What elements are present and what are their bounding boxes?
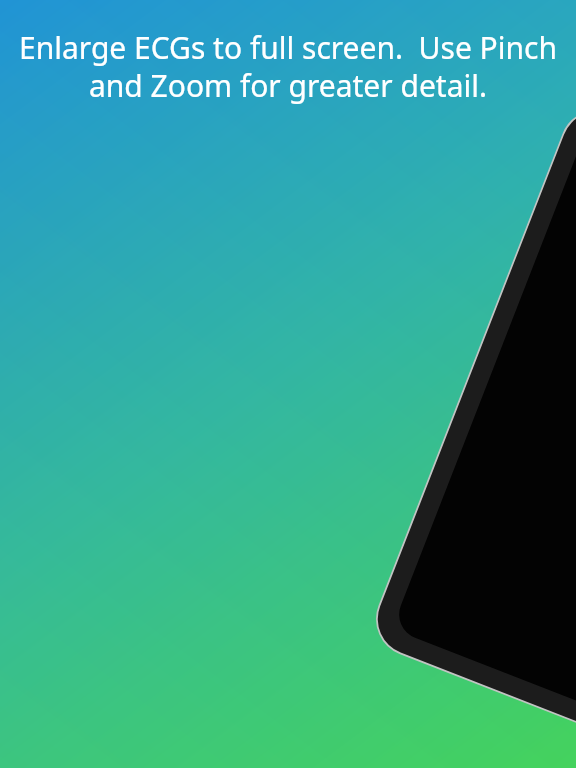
button[interactable]: Enlarge ECGs to full screen. Use Pinch a… (14, 27, 562, 106)
